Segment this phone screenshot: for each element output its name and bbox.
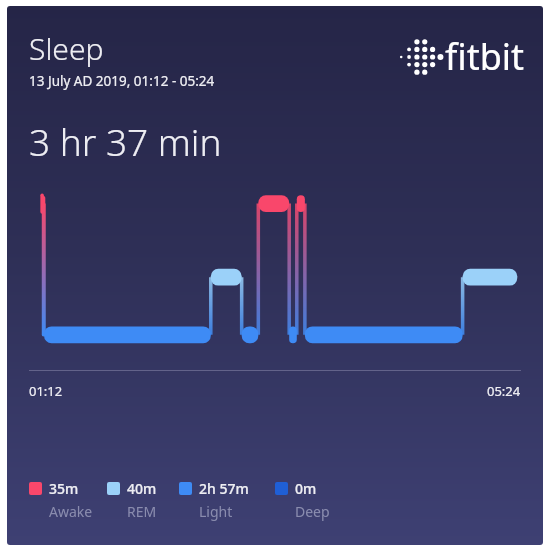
staticText: REM	[127, 502, 157, 521]
staticText: 35m	[49, 479, 79, 498]
button[interactable]	[7, 190, 543, 350]
staticText: 05:24	[487, 382, 521, 400]
staticText: 40m	[127, 479, 157, 498]
button[interactable]: 35m	[29, 479, 107, 521]
staticText: Deep	[295, 502, 330, 521]
staticText: 01:12	[29, 382, 63, 400]
staticText: 3 hr 37 min	[29, 116, 222, 166]
staticText: 0m	[295, 479, 317, 498]
staticText: 13 July AD 2019, 01:12 - 05:24	[29, 72, 215, 90]
button[interactable]: 40m	[107, 479, 179, 521]
button[interactable]: 0m	[275, 479, 335, 521]
staticText: fitbit	[445, 32, 525, 81]
staticText: 2h 57m	[199, 479, 249, 498]
button[interactable]: 2h 57m	[179, 479, 275, 521]
staticText: Sleep	[29, 28, 104, 69]
staticText: Light	[199, 502, 233, 521]
staticText: Awake	[49, 502, 93, 521]
button[interactable]: Fitbit	[405, 32, 525, 81]
